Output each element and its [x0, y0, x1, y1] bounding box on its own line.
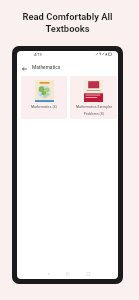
staticText: Mathematics	[32, 65, 61, 71]
staticText: Read Comfortably All Textbooks	[22, 11, 113, 34]
button[interactable]: Mathematics Exemplar Problems (X)	[70, 76, 117, 119]
button[interactable]: Mathematics (X)	[21, 76, 67, 119]
button[interactable]: Back	[18, 62, 31, 75]
staticText: 4:19	[34, 52, 42, 57]
button[interactable]: Recents	[84, 267, 118, 279]
staticText: Mathematics (X)	[31, 105, 57, 109]
button[interactable]: Back	[17, 267, 50, 279]
staticText: Mathematics Exemplar Problems (X)	[76, 105, 112, 116]
